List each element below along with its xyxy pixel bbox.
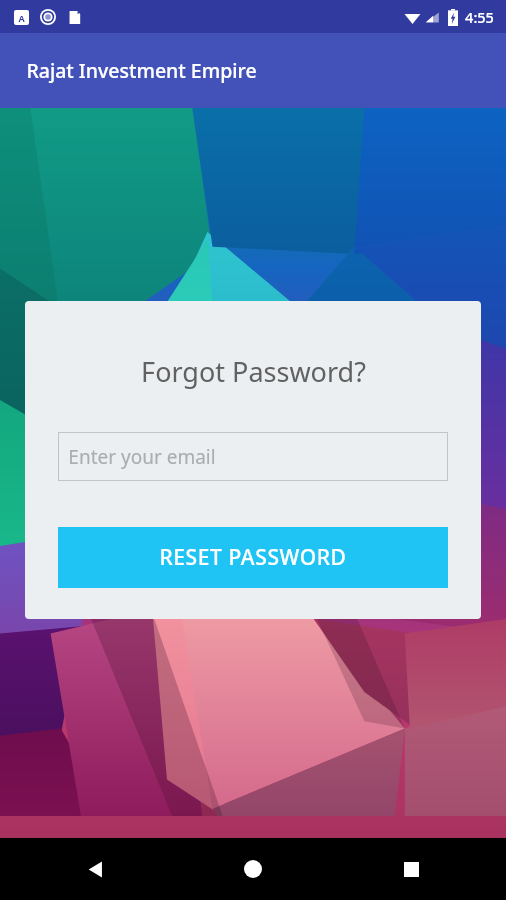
button[interactable]: RESET PASSWORD: [58, 527, 448, 588]
staticText: Enter your email: [68, 444, 216, 470]
staticText: RESET PASSWORD: [159, 543, 347, 572]
staticText: A: [18, 12, 25, 24]
button[interactable]: Recent apps: [390, 848, 432, 890]
staticText: 4:55: [465, 7, 494, 27]
button[interactable]: Back: [74, 848, 116, 890]
button[interactable]: Home: [232, 848, 274, 890]
button[interactable]: Enter your email: [58, 432, 448, 481]
staticText: Rajat Investment Empire: [26, 57, 257, 84]
staticText: Forgot Password?: [141, 353, 366, 390]
